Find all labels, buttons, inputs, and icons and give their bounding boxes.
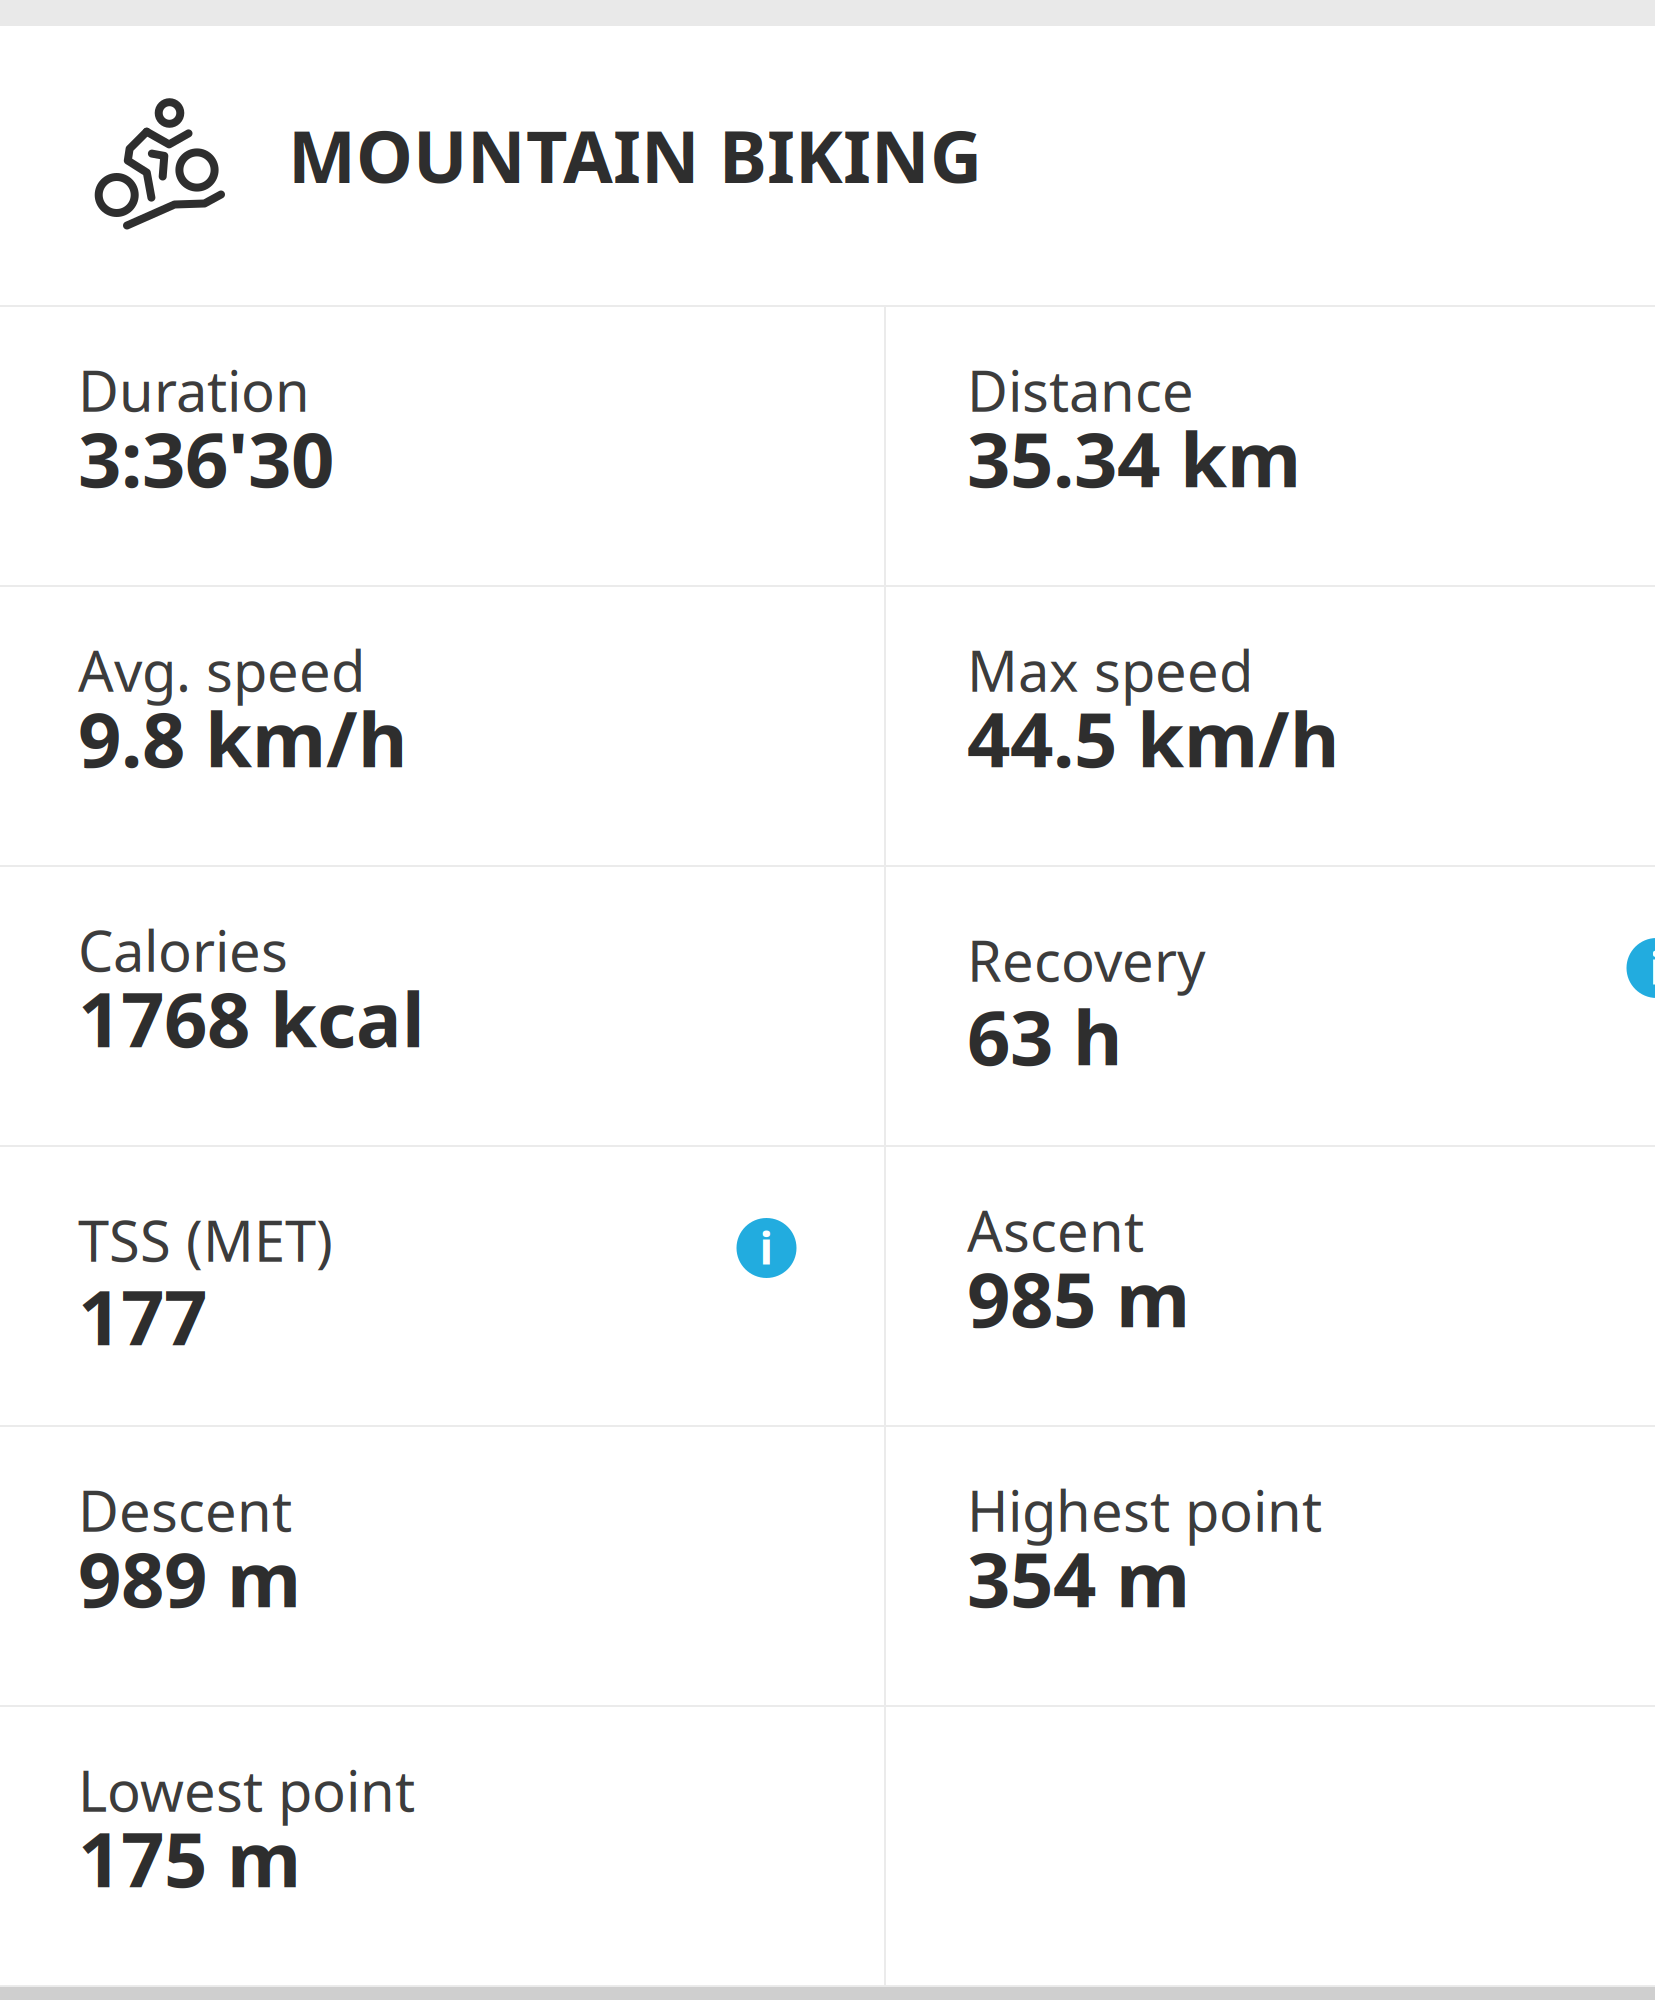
staticText: 989 m (78, 1526, 301, 1629)
staticText: Avg. speed (78, 632, 365, 708)
staticText: 44.5 km/h (967, 686, 1339, 789)
button[interactable]: Duration (0, 307, 884, 585)
staticText: i (759, 1216, 773, 1278)
staticText: Ascent (967, 1192, 1144, 1268)
button[interactable]: MOUNTAIN BIKING (0, 26, 1655, 305)
staticText: 985 m (967, 1246, 1190, 1349)
staticText: 3:36'30 (78, 406, 334, 509)
button[interactable]: About this metric (721, 1203, 811, 1293)
staticText: Distance (967, 352, 1194, 428)
button[interactable]: Recovery (886, 867, 1655, 1145)
staticText: 35.34 km (967, 406, 1301, 509)
staticText: 177 (78, 1264, 207, 1367)
button[interactable]: Descent (0, 1427, 884, 1705)
staticText: 175 m (78, 1806, 301, 1909)
staticText: 63 h (967, 984, 1122, 1087)
staticText: TSS (MET) (78, 1202, 333, 1278)
staticText: Max speed (967, 632, 1253, 708)
button[interactable]: TSS (MET) (0, 1147, 884, 1425)
button[interactable]: Lowest point (0, 1707, 884, 1985)
button[interactable]: Ascent (886, 1147, 1655, 1425)
staticText: i (1649, 936, 1655, 998)
button[interactable]: Avg. speed (0, 587, 884, 865)
staticText: 1768 kcal (78, 966, 425, 1069)
button[interactable]: Max speed (886, 587, 1655, 865)
staticText: Lowest point (78, 1752, 415, 1828)
staticText: Highest point (967, 1472, 1322, 1548)
staticText: Duration (78, 352, 310, 428)
button[interactable]: Calories (0, 867, 884, 1145)
staticText: Descent (78, 1472, 292, 1548)
staticText: 354 m (967, 1526, 1190, 1629)
button[interactable]: Highest point (886, 1427, 1655, 1705)
staticText: Calories (78, 912, 288, 988)
staticText: Recovery (967, 922, 1206, 998)
staticText: 9.8 km/h (78, 686, 407, 789)
staticText: MOUNTAIN BIKING (288, 106, 982, 204)
button[interactable]: About this metric (1611, 923, 1655, 1013)
button[interactable]: Distance (886, 307, 1655, 585)
